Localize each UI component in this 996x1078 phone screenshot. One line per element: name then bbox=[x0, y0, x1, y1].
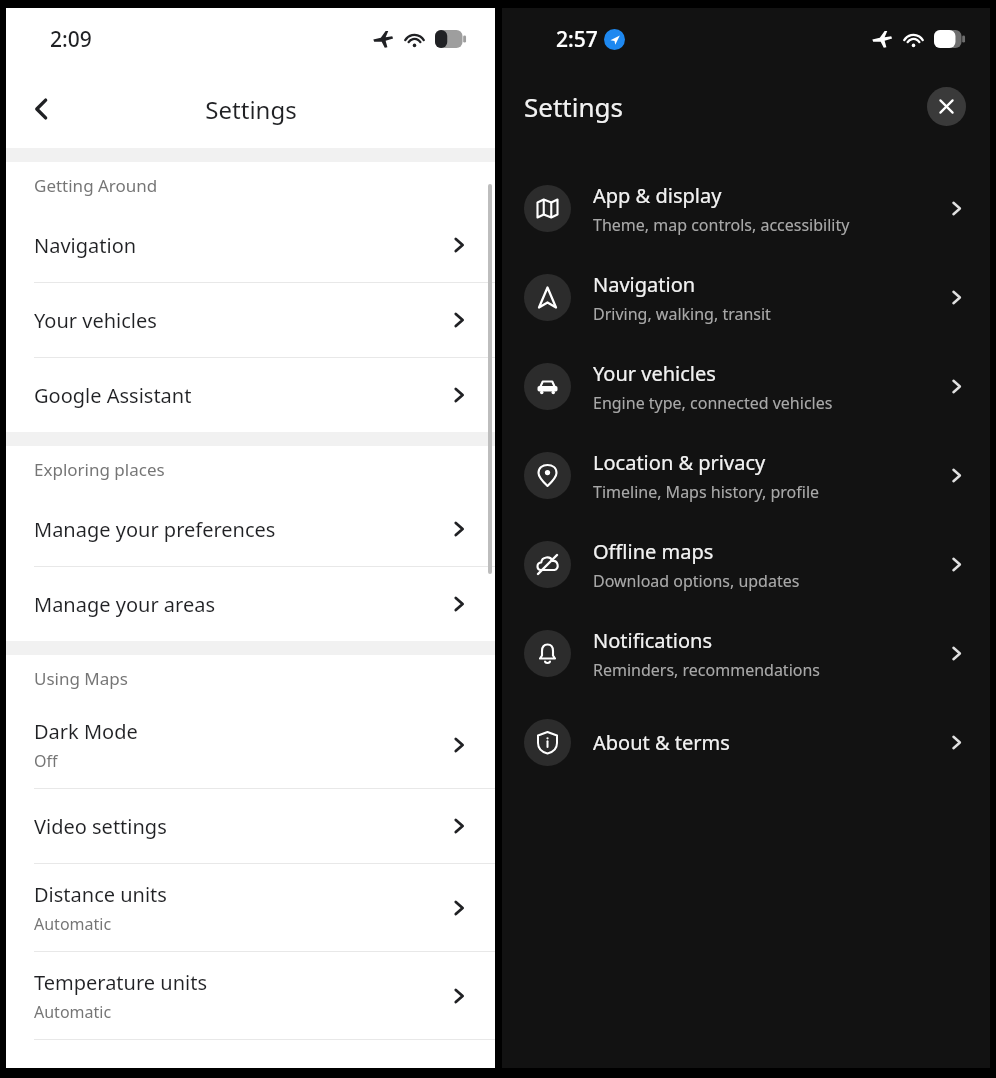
staticText: Driving, walking, transit bbox=[593, 303, 771, 325]
staticText: Automatic bbox=[34, 1001, 112, 1023]
staticText: Timeline, Maps history, profile bbox=[593, 481, 820, 503]
staticText: Manage your preferences bbox=[34, 516, 276, 543]
staticText: Notifications bbox=[593, 627, 712, 654]
button[interactable]: Navigation bbox=[6, 208, 495, 283]
staticText: Exploring places bbox=[34, 458, 165, 481]
button[interactable]: Your vehicles bbox=[6, 283, 495, 358]
button[interactable]: Notifications bbox=[502, 609, 990, 698]
staticText: Offline maps bbox=[593, 538, 714, 565]
staticText: Temperature units bbox=[34, 969, 207, 996]
button[interactable]: Navigation bbox=[502, 253, 990, 342]
button[interactable]: Offline maps bbox=[502, 520, 990, 609]
button[interactable]: Video settings bbox=[6, 789, 495, 864]
staticText: Dark Mode bbox=[34, 718, 138, 745]
staticText: Settings bbox=[205, 93, 297, 126]
button[interactable]: Back bbox=[18, 85, 66, 133]
button[interactable]: Manage your areas bbox=[6, 567, 495, 641]
button[interactable]: Dark Mode bbox=[6, 701, 495, 789]
staticText: Distance units bbox=[34, 881, 167, 908]
staticText: Navigation bbox=[593, 271, 696, 298]
staticText: Reminders, recommendations bbox=[593, 659, 820, 681]
staticText: Using Maps bbox=[34, 667, 128, 690]
staticText: 2:57 bbox=[556, 25, 598, 54]
staticText: Settings bbox=[524, 89, 623, 124]
staticText: 2:09 bbox=[50, 25, 92, 54]
staticText: Your vehicles bbox=[34, 307, 157, 334]
staticText: Download options, updates bbox=[593, 570, 800, 592]
button[interactable]: Your vehicles bbox=[502, 342, 990, 431]
staticText: Off bbox=[34, 750, 58, 772]
staticText: Video settings bbox=[34, 813, 167, 840]
button[interactable]: Manage your preferences bbox=[6, 492, 495, 567]
staticText: Getting Around bbox=[34, 174, 158, 197]
staticText: Your vehicles bbox=[593, 360, 716, 387]
staticText: Google Assistant bbox=[34, 382, 192, 409]
staticText: Navigation bbox=[34, 232, 137, 259]
staticText: Location & privacy bbox=[593, 449, 766, 476]
staticText: Theme, map controls, accessibility bbox=[593, 214, 850, 236]
button[interactable]: Temperature units bbox=[6, 952, 495, 1040]
staticText: App & display bbox=[593, 182, 722, 209]
staticText: Automatic bbox=[34, 913, 112, 935]
button[interactable]: About & terms bbox=[502, 698, 990, 787]
button[interactable]: Google Assistant bbox=[6, 358, 495, 432]
staticText: Engine type, connected vehicles bbox=[593, 392, 833, 414]
staticText: Manage your areas bbox=[34, 591, 215, 618]
button[interactable]: Distance units bbox=[6, 864, 495, 952]
button[interactable]: App & display bbox=[502, 164, 990, 253]
staticText: About & terms bbox=[593, 729, 730, 756]
button[interactable]: Location & privacy bbox=[502, 431, 990, 520]
button[interactable]: Close bbox=[927, 87, 966, 126]
